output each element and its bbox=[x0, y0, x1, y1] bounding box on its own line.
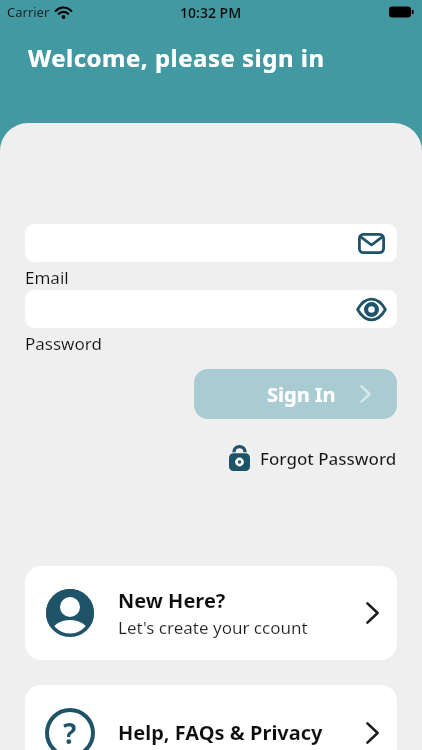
staticText: Carrier bbox=[7, 3, 50, 21]
staticText: Let's create your ccount bbox=[118, 616, 308, 639]
button[interactable]: ? bbox=[25, 685, 397, 750]
staticText: Forgot Password bbox=[260, 447, 397, 470]
staticText: Password bbox=[25, 332, 102, 355]
staticText: Help, FAQs & Privacy bbox=[118, 719, 323, 746]
button[interactable]: Sign In bbox=[194, 369, 397, 419]
button[interactable]: Forgot Password bbox=[229, 444, 397, 472]
button[interactable]: New Here? bbox=[25, 566, 397, 660]
staticText: 10:32 PM bbox=[180, 3, 242, 22]
button[interactable] bbox=[25, 290, 397, 328]
staticText: Email bbox=[25, 266, 69, 289]
staticText: ? bbox=[63, 714, 77, 750]
button[interactable] bbox=[25, 224, 397, 262]
staticText: Welcome, please sign in bbox=[28, 41, 325, 74]
staticText: Sign In bbox=[267, 381, 336, 408]
staticText: New Here? bbox=[118, 587, 226, 614]
